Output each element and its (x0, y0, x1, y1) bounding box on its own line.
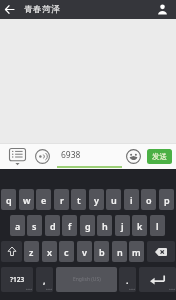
button[interactable]: x (42, 241, 57, 262)
staticText: u (111, 194, 117, 206)
button[interactable] (124, 147, 143, 166)
button[interactable]: r (54, 189, 69, 210)
staticText: 发送 (152, 152, 167, 161)
button[interactable] (7, 146, 27, 166)
staticText: l (156, 220, 159, 232)
staticText: f (68, 220, 72, 232)
staticText: e (41, 194, 47, 206)
button[interactable]: f (62, 215, 77, 236)
button[interactable]: y (89, 189, 104, 210)
button[interactable]: , (36, 267, 53, 292)
staticText: q (6, 194, 12, 206)
button[interactable]: p (159, 189, 174, 210)
staticText: s (32, 220, 37, 232)
button[interactable]: e (36, 189, 51, 210)
button[interactable]: 发送 (147, 149, 172, 164)
button[interactable]: m (129, 241, 144, 262)
staticText: d (50, 220, 56, 232)
staticText: c (64, 246, 69, 258)
staticText: w (23, 194, 31, 206)
staticText: j (121, 220, 124, 232)
button[interactable] (33, 147, 51, 165)
staticText: 6938 (61, 149, 81, 161)
button[interactable]: c (59, 241, 74, 262)
button[interactable]: a (10, 215, 25, 236)
button[interactable] (1, 241, 22, 262)
button[interactable] (0, 0, 19, 19)
staticText: i (130, 194, 133, 206)
staticText: b (99, 246, 105, 258)
staticText: , (43, 274, 46, 286)
button[interactable]: u (106, 189, 121, 210)
button[interactable]: w (19, 189, 34, 210)
staticText: z (29, 246, 34, 258)
staticText: k (137, 220, 143, 232)
button[interactable]: b (94, 241, 109, 262)
button[interactable]: s (27, 215, 42, 236)
staticText: o (146, 194, 152, 206)
button[interactable]: z (24, 241, 39, 262)
button[interactable]: k (132, 215, 147, 236)
button[interactable]: q (1, 189, 16, 210)
staticText: r (60, 194, 64, 206)
staticText: a (15, 220, 21, 232)
button[interactable]: h (97, 215, 112, 236)
staticText: t (77, 194, 81, 206)
button[interactable] (147, 241, 175, 262)
staticText: g (85, 220, 91, 232)
button[interactable] (153, 0, 172, 19)
button[interactable]: l (150, 215, 165, 236)
button[interactable]: j (115, 215, 130, 236)
button[interactable]: English (US) (56, 267, 117, 292)
staticText: n (117, 246, 123, 258)
staticText: x (47, 246, 53, 258)
button[interactable]: . (119, 267, 136, 292)
staticText: p (164, 194, 170, 206)
staticText: English (US) (73, 276, 101, 283)
staticText: y (94, 194, 99, 206)
staticText: ?123 (10, 275, 25, 284)
staticText: 青春菏泽 (24, 4, 61, 15)
staticText: h (102, 220, 108, 232)
button[interactable]: t (71, 189, 86, 210)
staticText: . (126, 274, 129, 286)
button[interactable]: v (77, 241, 92, 262)
staticText: v (82, 246, 87, 258)
button[interactable]: 6938 (57, 143, 122, 169)
button[interactable] (139, 267, 176, 292)
button[interactable]: g (80, 215, 95, 236)
button[interactable]: o (141, 189, 156, 210)
button[interactable]: ?123 (1, 267, 33, 292)
button[interactable]: n (112, 241, 127, 262)
button[interactable]: d (45, 215, 60, 236)
button[interactable]: i (124, 189, 139, 210)
staticText: m (132, 246, 141, 258)
